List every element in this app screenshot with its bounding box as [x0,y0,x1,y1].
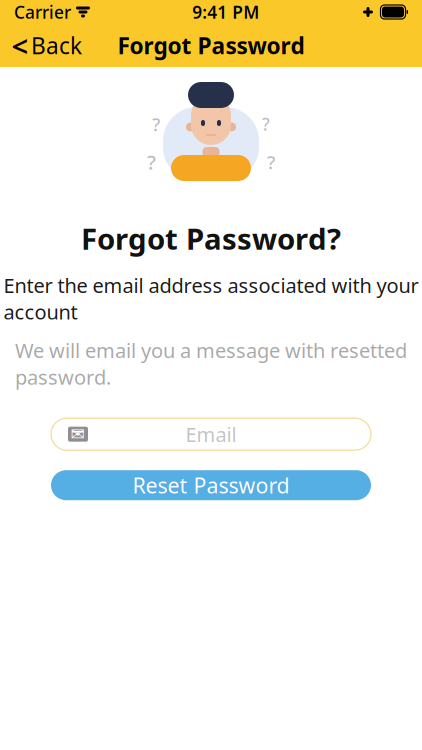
staticText: Forgot Password? [81,219,341,258]
staticText: Email [185,421,236,447]
staticText: ? [147,149,156,175]
staticText: Back [31,30,82,60]
staticText: Carrier [14,0,71,23]
staticText: ? [152,112,160,136]
staticText: Forgot Password [117,30,304,60]
staticText: < [11,26,28,65]
button[interactable]: Reset Password [51,470,371,500]
staticText: ✉ [70,424,85,444]
staticText: ? [262,112,270,135]
button[interactable]: < [0,24,96,67]
staticText: We will email you a message with resette… [15,337,407,390]
staticText: ? [267,150,275,174]
staticText: Enter the email address associated with … [3,272,418,325]
staticText: ? [206,86,215,112]
staticText: 9:41 PM [192,0,259,23]
button[interactable]: Email [51,418,371,450]
staticText: Reset Password [132,471,289,499]
